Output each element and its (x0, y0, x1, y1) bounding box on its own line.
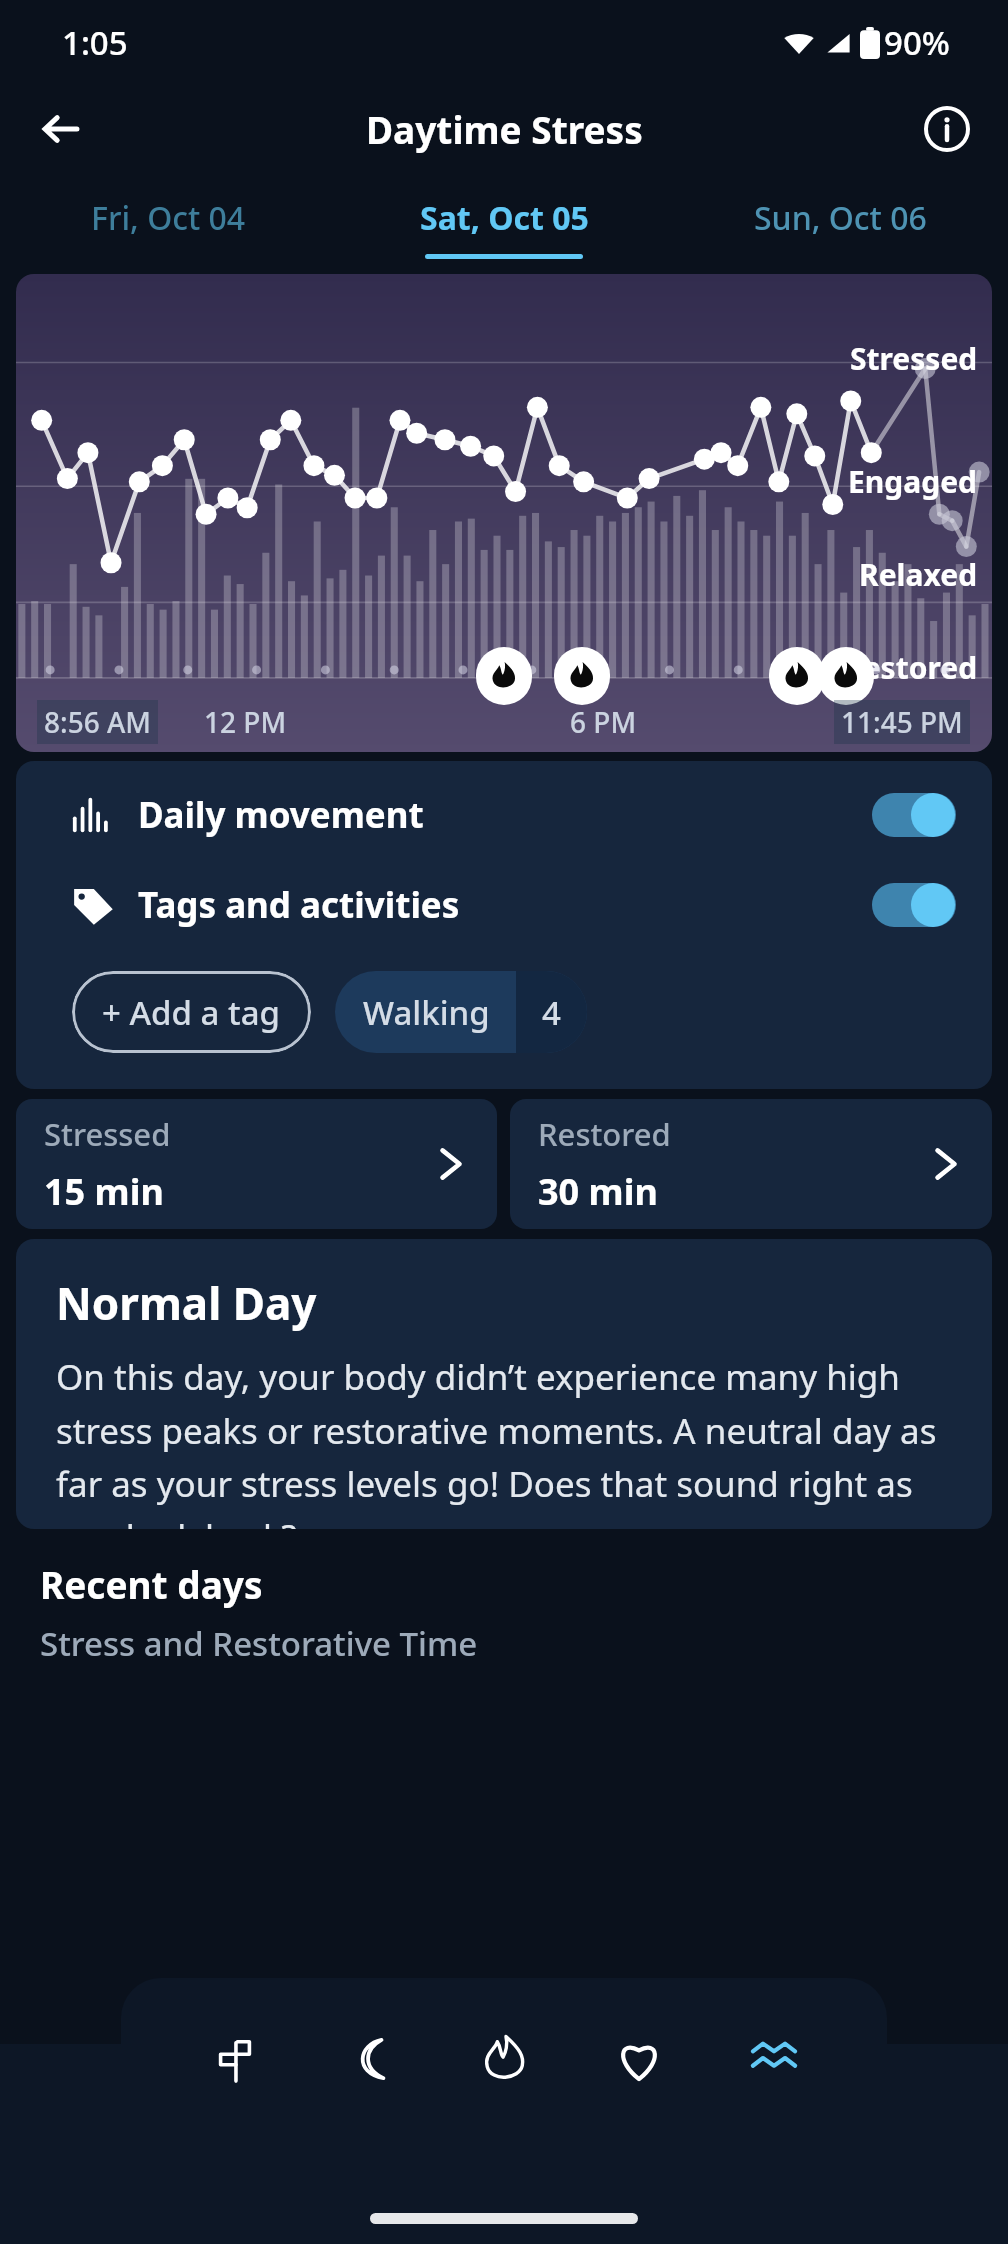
staticText: 90% (884, 20, 950, 65)
staticText: Walking (363, 990, 490, 1035)
button[interactable]: Normal Day (16, 1239, 992, 1529)
staticText: Daytime Stress (366, 104, 643, 154)
staticText: 4 (542, 990, 561, 1035)
button[interactable]: Stress (462, 2016, 548, 2102)
staticText: 6 PM (570, 703, 637, 741)
button[interactable]: Sat, Oct 05 (336, 174, 672, 269)
staticText: 30 min (538, 1167, 658, 1216)
staticText: Sat, Oct 05 (420, 196, 589, 240)
staticText: Tags and activities (138, 881, 460, 929)
button[interactable]: Sun, Oct 06 (672, 174, 1008, 269)
staticText: 15 min (44, 1167, 164, 1216)
button[interactable]: Daily movement (72, 791, 956, 839)
staticText: 12 PM (204, 703, 287, 741)
button[interactable]: Toggle (872, 883, 956, 927)
button[interactable]: + Add a tag (72, 971, 311, 1053)
button[interactable]: Restored (510, 1099, 992, 1229)
staticText: Stressed (850, 338, 978, 379)
button[interactable]: Information (912, 94, 982, 164)
staticText: Engaged (848, 461, 978, 502)
button[interactable]: Stressed (16, 274, 992, 752)
staticText: 8:56 AM (44, 703, 151, 741)
staticText: Fri, Oct 04 (91, 196, 246, 240)
staticText: Restored (538, 1113, 671, 1155)
button[interactable]: Tags and activities (72, 881, 956, 929)
button[interactable]: Heart (596, 2016, 682, 2102)
button[interactable]: Toggle (872, 793, 956, 837)
button[interactable]: Walking (335, 971, 587, 1053)
staticText: + Add a tag (102, 990, 281, 1035)
staticText: 1:05 (62, 20, 128, 65)
staticText: 11:45 PM (841, 703, 963, 741)
staticText: Daily movement (138, 791, 424, 839)
button[interactable]: Fri, Oct 04 (0, 174, 336, 269)
staticText: Normal Day (56, 1273, 317, 1333)
staticText: Relaxed (859, 554, 978, 595)
button[interactable]: Sleep (327, 2016, 413, 2102)
staticText: Restored (843, 647, 978, 688)
staticText: On this day, your body didn’t experience… (56, 1353, 956, 1529)
button[interactable]: Stressed (16, 1099, 497, 1229)
staticText: Stressed (44, 1113, 171, 1155)
button[interactable]: Back (26, 94, 96, 164)
staticText: Sun, Oct 06 (754, 196, 927, 240)
button[interactable]: Body (731, 2016, 817, 2102)
button[interactable]: Today (192, 2016, 278, 2102)
staticText: Recent days (40, 1559, 263, 1609)
staticText: Stress and Restorative Time (40, 1621, 478, 1666)
